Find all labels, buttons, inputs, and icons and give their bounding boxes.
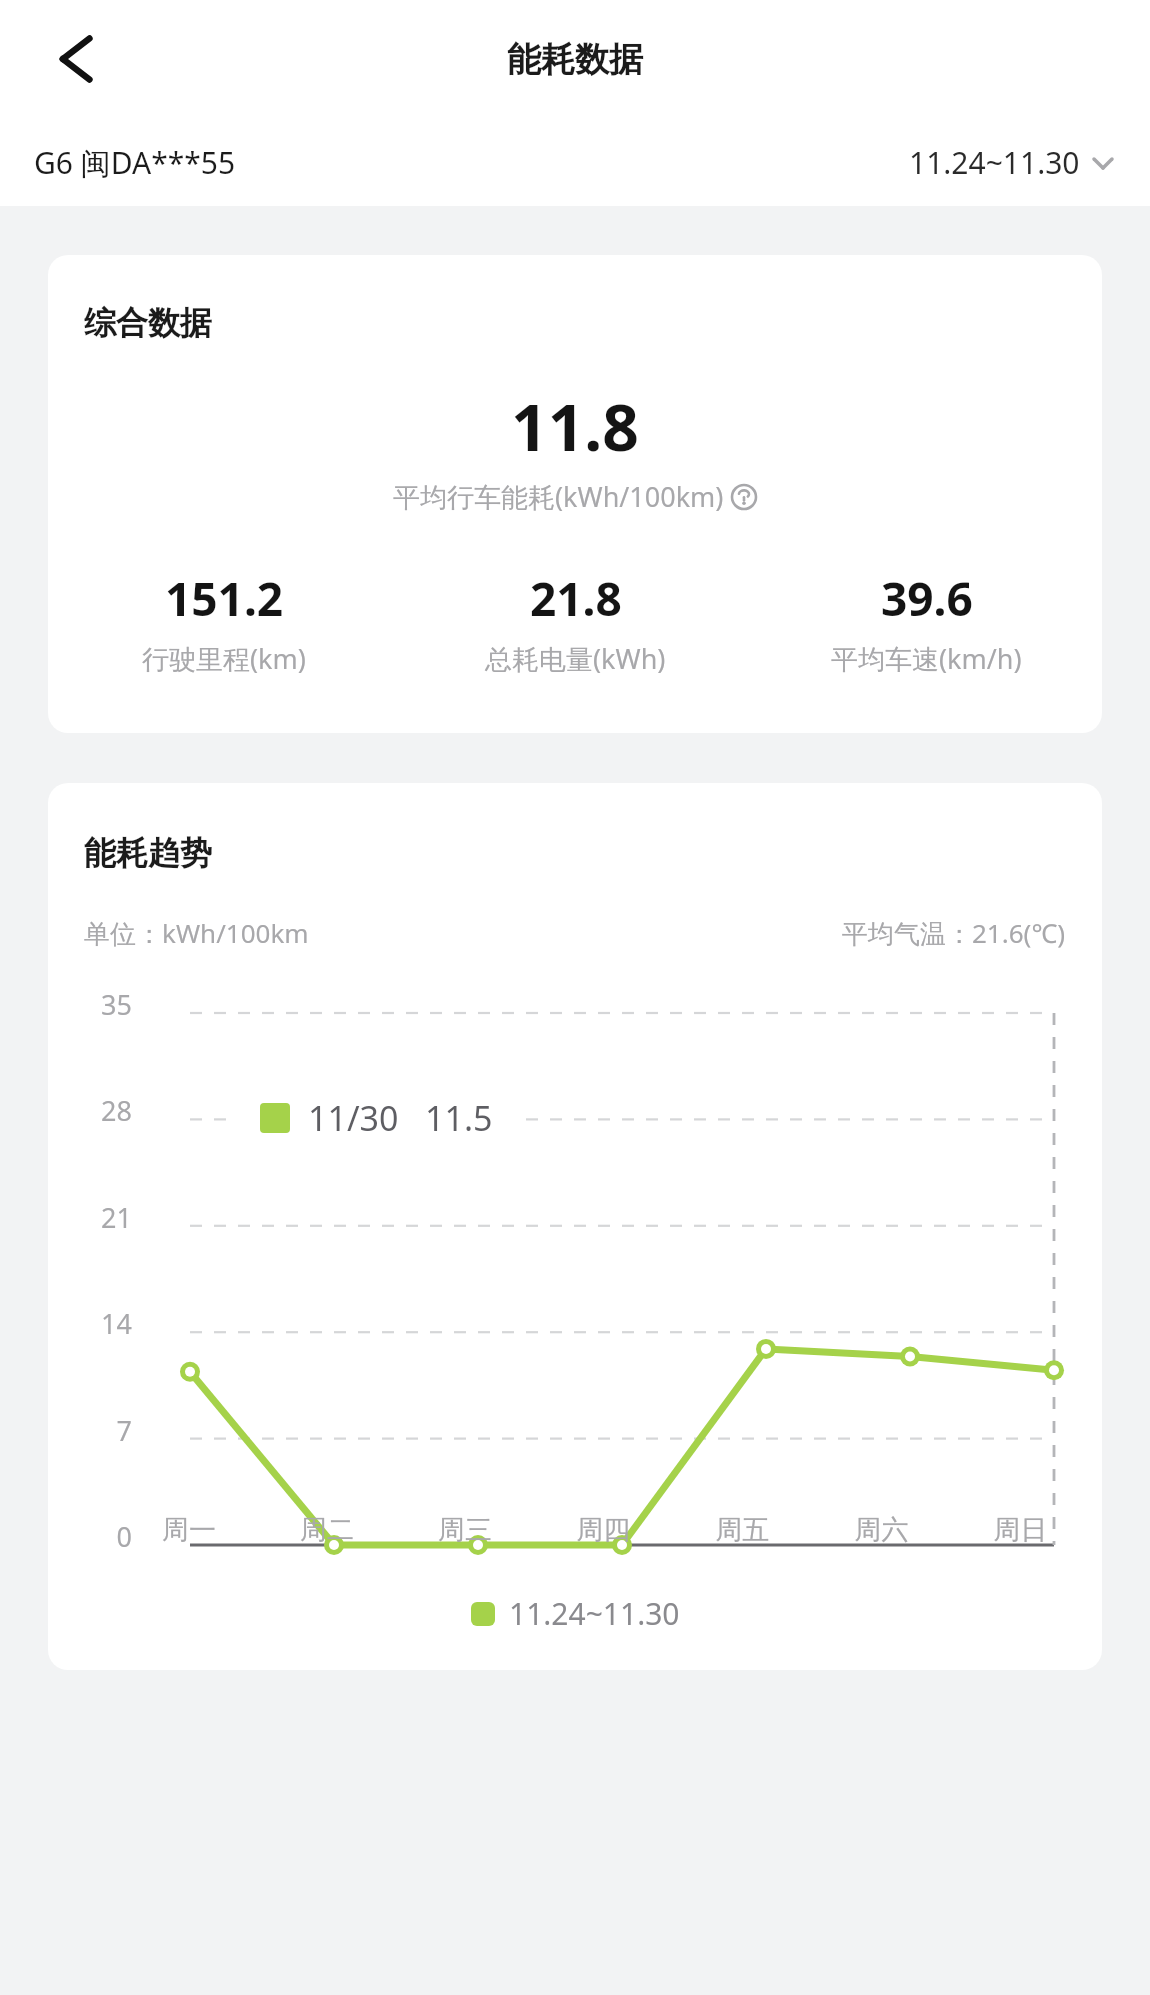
- staticText: 行驶里程(km): [142, 640, 306, 677]
- staticText: 14: [66, 1305, 132, 1342]
- button[interactable]: 说明: [730, 483, 758, 511]
- staticText: 35: [66, 986, 132, 1023]
- staticText: 28: [66, 1092, 132, 1129]
- staticText: 平均气温：21.6(℃): [842, 915, 1066, 951]
- staticText: G6 闽DA***55: [34, 142, 236, 183]
- button[interactable]: 151.2: [48, 567, 400, 677]
- staticText: 151.2: [165, 567, 284, 630]
- staticText: 0: [66, 1518, 132, 1555]
- staticText: 11.24~11.30: [909, 142, 1080, 183]
- button[interactable]: 39.6: [751, 567, 1102, 677]
- staticText: 能耗数据: [507, 38, 643, 81]
- staticText: 周五: [673, 1513, 812, 1547]
- staticText: 综合数据: [84, 303, 212, 343]
- staticText: 平均车速(km/h): [831, 640, 1022, 677]
- staticText: 能耗趋势: [84, 833, 212, 873]
- staticText: 总耗电量(kWh): [485, 640, 666, 677]
- staticText: 7: [66, 1412, 132, 1449]
- button[interactable]: 综合数据: [48, 255, 1102, 733]
- staticText: 平均行车能耗(kWh/100km): [393, 478, 724, 515]
- button[interactable]: 能耗趋势: [48, 783, 1102, 1670]
- staticText: 周六: [812, 1513, 951, 1547]
- staticText: 周一: [120, 1513, 258, 1547]
- staticText: 11.8: [48, 383, 1102, 470]
- button[interactable]: 11/30: [230, 1071, 523, 1165]
- staticText: 11.24~11.30: [509, 1593, 680, 1634]
- staticText: 21: [66, 1199, 132, 1236]
- button[interactable]: Back: [34, 26, 100, 92]
- button[interactable]: 11.24~11.30: [909, 142, 1116, 183]
- staticText: 21.8: [530, 567, 622, 630]
- staticText: 周三: [396, 1513, 534, 1547]
- staticText: 11/30: [308, 1095, 399, 1141]
- staticText: 11.5: [425, 1095, 493, 1141]
- staticText: 周二: [258, 1513, 396, 1547]
- staticText: 39.6: [881, 567, 973, 630]
- button[interactable]: 21.8: [400, 567, 751, 677]
- staticText: 单位：kWh/100km: [84, 915, 309, 951]
- staticText: 周日: [951, 1513, 1090, 1547]
- staticText: 周四: [534, 1513, 673, 1547]
